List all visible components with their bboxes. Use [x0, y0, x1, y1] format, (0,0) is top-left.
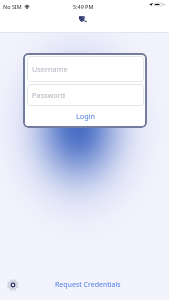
button[interactable]: Request Credentials	[55, 280, 121, 290]
button[interactable]: Username	[27, 56, 144, 82]
button[interactable]: Settings	[7, 279, 19, 291]
staticText: Request Credentials	[55, 280, 121, 290]
staticText: Password	[32, 90, 66, 100]
button[interactable]: Login	[27, 106, 144, 126]
staticText: Username	[32, 64, 68, 74]
staticText: No SIM	[3, 3, 22, 10]
staticText: 5:49 PM	[73, 3, 94, 10]
button[interactable]: Password	[27, 84, 144, 106]
staticText: Login	[76, 111, 96, 121]
